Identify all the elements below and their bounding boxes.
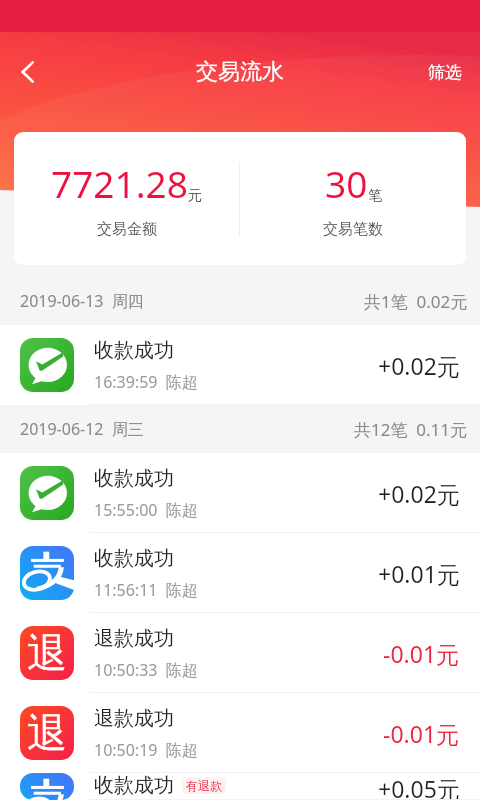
button[interactable]: 收款成功 (0, 773, 480, 800)
staticText: 收款成功 (94, 466, 174, 491)
staticText: 元 (188, 187, 202, 205)
staticText: +0.02元 (378, 478, 460, 509)
staticText: 退款成功 (94, 626, 174, 651)
staticText: +0.02元 (378, 350, 460, 381)
staticText: 共12笔 0.11元 (354, 418, 468, 441)
staticText: 16:39:59 陈超 (94, 371, 198, 393)
staticText: 7721.28 (51, 158, 188, 208)
staticText: 退 (27, 708, 67, 758)
staticText: 30 (325, 158, 368, 208)
staticText: -0.01元 (383, 638, 460, 669)
button[interactable]: 收款成功 (0, 533, 480, 613)
staticText: 15:55:00 陈超 (94, 499, 198, 521)
button[interactable]: 返回 (4, 48, 52, 96)
staticText: 10:50:33 陈超 (94, 659, 198, 681)
staticText: 共1笔 0.02元 (364, 290, 468, 313)
staticText: +0.01元 (378, 558, 460, 589)
staticText: +0.05元 (378, 773, 460, 800)
button[interactable]: 收款成功 (0, 453, 480, 533)
staticText: 退款成功 (94, 706, 174, 731)
staticText: 交易金额 (97, 220, 157, 239)
staticText: 退 (27, 628, 67, 678)
staticText: 交易流水 (196, 58, 284, 86)
staticText: 筛选 (428, 62, 462, 83)
staticText: 2019-06-12 周三 (20, 418, 144, 440)
staticText: 笔 (368, 187, 382, 205)
staticText: 2019-06-13 周四 (20, 290, 144, 312)
staticText: 收款成功 (94, 773, 174, 798)
staticText: 交易笔数 (323, 220, 383, 239)
button[interactable]: 退 (0, 693, 480, 773)
staticText: -0.01元 (383, 718, 460, 749)
button[interactable]: 收款成功 (0, 325, 480, 405)
staticText: 收款成功 (94, 338, 174, 363)
button[interactable]: 筛选 (410, 48, 480, 96)
staticText: 收款成功 (94, 546, 174, 571)
staticText: 10:50:19 陈超 (94, 739, 198, 761)
staticText: 11:56:11 陈超 (94, 579, 198, 601)
button[interactable]: 退 (0, 613, 480, 693)
staticText: 有退款 (186, 778, 222, 793)
